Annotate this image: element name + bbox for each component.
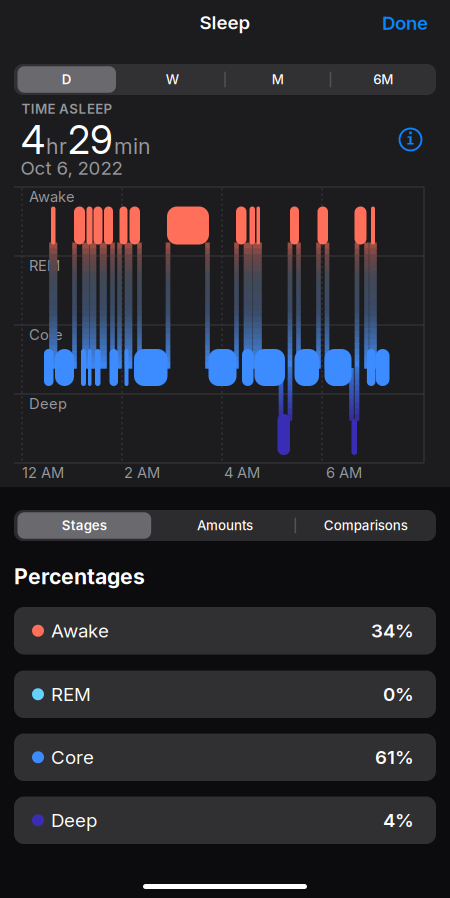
staticText: Awake [29, 188, 75, 205]
staticText: Stages [62, 518, 107, 533]
button[interactable]: Deep [14, 796, 436, 844]
staticText: 4% [383, 809, 414, 831]
button[interactable]: REM [14, 670, 436, 718]
staticText: hr [46, 133, 67, 159]
button[interactable]: M [225, 64, 330, 95]
staticText: 6 AM [326, 464, 362, 481]
staticText: 2 AM [124, 464, 160, 481]
staticText: M [272, 72, 284, 87]
button[interactable]: Awake [14, 607, 436, 654]
button[interactable]: Done [382, 12, 428, 34]
staticText: REM [29, 257, 60, 274]
staticText: 29 [68, 117, 113, 163]
staticText: Sleep [199, 11, 250, 33]
staticText: D [62, 72, 72, 87]
staticText: W [166, 72, 179, 87]
staticText: REM [51, 683, 91, 705]
button[interactable]: Comparisons [295, 510, 436, 541]
button[interactable]: Amounts [155, 510, 295, 541]
staticText: TIME ASLEEP [21, 101, 112, 117]
staticText: 0% [383, 683, 414, 705]
staticText: Core [29, 326, 63, 343]
button[interactable]: Core [14, 733, 436, 781]
staticText: Percentages [14, 564, 145, 589]
staticText: 12 AM [22, 464, 64, 481]
button[interactable]: About Sleep [395, 124, 425, 154]
staticText: Amounts [197, 518, 253, 533]
staticText: Deep [29, 395, 67, 412]
staticText: Awake [51, 620, 109, 642]
button[interactable]: W [119, 64, 225, 95]
button[interactable]: D [14, 64, 119, 95]
staticText: 34% [371, 620, 414, 642]
staticText: Core [51, 746, 94, 768]
staticText: Done [382, 12, 428, 34]
button[interactable]: 6M [330, 64, 436, 95]
staticText: min [114, 133, 151, 159]
button[interactable]: Stages [14, 510, 155, 541]
staticText: 4 AM [224, 464, 260, 481]
staticText: 61% [375, 746, 414, 768]
staticText: 6M [373, 72, 393, 87]
staticText: Deep [51, 809, 97, 831]
staticText: 4 [21, 117, 45, 163]
staticText: Comparisons [324, 518, 408, 533]
staticText: Oct 6, 2022 [20, 157, 122, 179]
